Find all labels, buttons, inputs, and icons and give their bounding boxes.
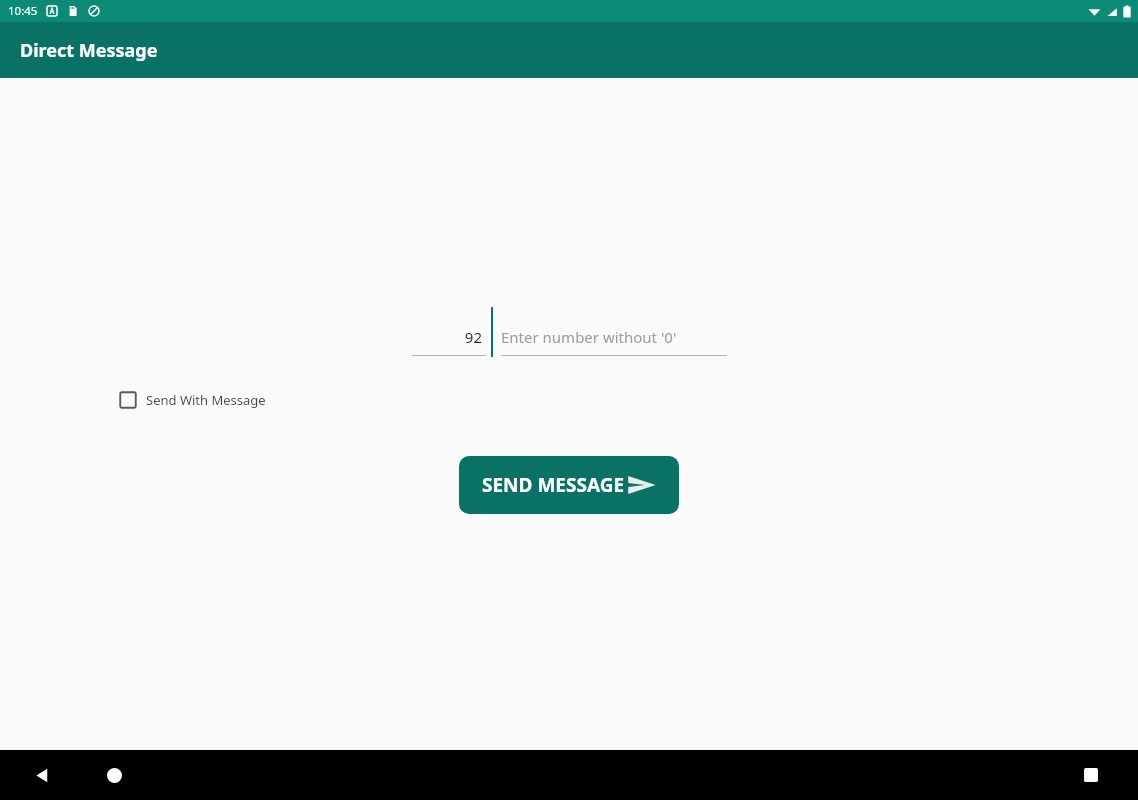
button[interactable]: Back — [22, 755, 62, 795]
button[interactable]: Recents — [1071, 755, 1111, 795]
button[interactable]: Enter number without '0' — [501, 308, 727, 356]
staticText: 92 — [464, 327, 482, 347]
button[interactable]: Send With Message — [113, 386, 272, 414]
staticText: Enter number without '0' — [501, 327, 677, 347]
button[interactable]: Home — [94, 755, 134, 795]
button[interactable]: 92 — [412, 308, 486, 356]
staticText: Direct Message — [20, 38, 158, 63]
staticText: SEND MESSAGE — [482, 472, 625, 498]
button[interactable]: SEND MESSAGE — [459, 456, 679, 514]
staticText: Send With Message — [146, 391, 266, 409]
staticText: 10:45 — [8, 3, 38, 19]
